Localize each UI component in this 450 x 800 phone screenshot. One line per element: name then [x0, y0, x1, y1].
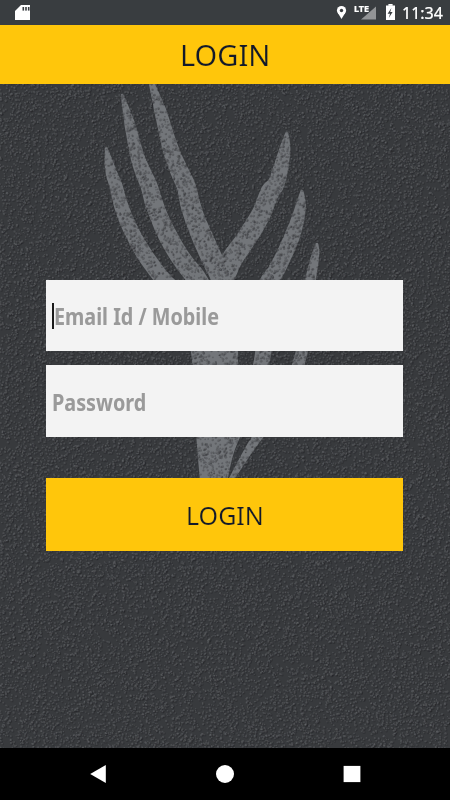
button[interactable]: Recents [324, 748, 380, 800]
button[interactable]: Back [70, 748, 126, 800]
staticText: LOGIN [186, 498, 264, 532]
staticText: 11:34 [402, 2, 443, 24]
button[interactable]: LOGIN [46, 478, 403, 551]
button[interactable]: Password [46, 365, 403, 437]
button[interactable]: Email Id / Mobile [46, 280, 403, 351]
staticText: LTE [354, 2, 370, 14]
staticText: Password [52, 386, 147, 417]
staticText: Email Id / Mobile [54, 300, 219, 331]
button[interactable]: LOGIN [0, 25, 450, 84]
staticText: LOGIN [180, 35, 271, 74]
button[interactable]: Home [197, 748, 253, 800]
